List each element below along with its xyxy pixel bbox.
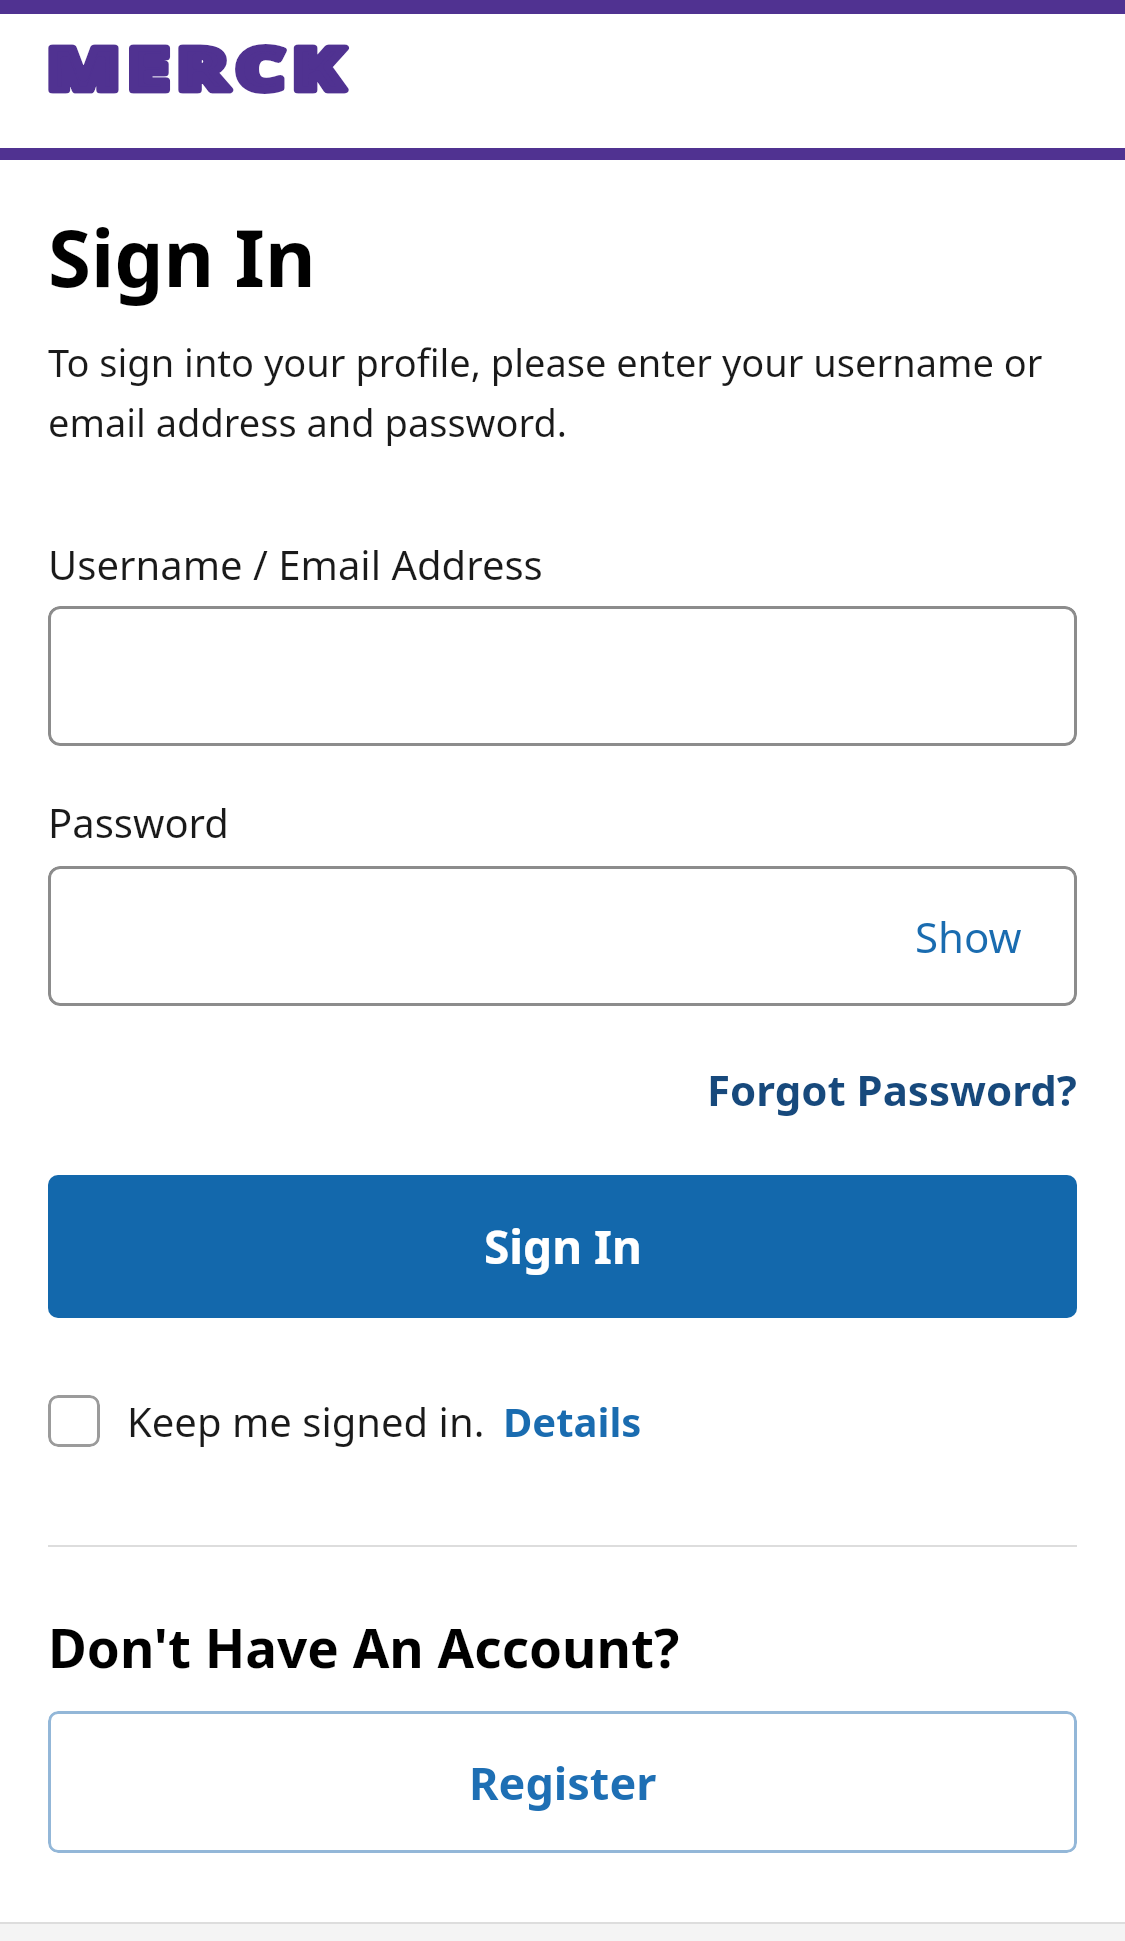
button[interactable]: Forgot Password? [707, 1061, 1077, 1118]
button[interactable] [48, 606, 1077, 746]
button[interactable]: Sign In [48, 1175, 1077, 1318]
staticText: Password [48, 795, 229, 849]
button[interactable]: Keep me signed in. [48, 1394, 1077, 1448]
staticText: Username / Email Address [48, 537, 543, 591]
staticText: Register [469, 1752, 657, 1813]
staticText: MERCK [47, 28, 352, 107]
staticText: Keep me signed in. [127, 1394, 485, 1448]
button[interactable]: Details [503, 1394, 642, 1448]
staticText: Sign In [48, 204, 316, 310]
staticText: MERCK [47, 28, 352, 107]
button[interactable] [48, 1395, 100, 1447]
button[interactable]: Show [48, 866, 1077, 1006]
button[interactable]: Show [915, 908, 1022, 965]
staticText: Don't Have An Account? [48, 1611, 680, 1683]
staticText: To sign into your profile, please enter … [48, 336, 1043, 448]
button[interactable]: Register [48, 1711, 1077, 1853]
staticText: Sign In [484, 1215, 642, 1278]
